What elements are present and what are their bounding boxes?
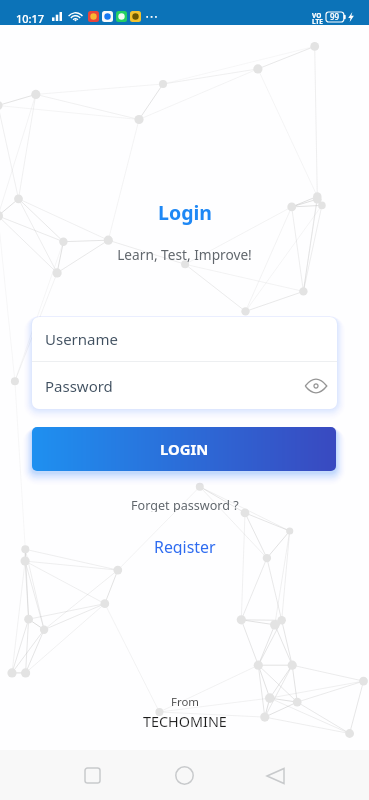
button[interactable]: LOGIN <box>32 427 336 471</box>
staticText: Learn, Test, Improve! <box>117 245 252 264</box>
button[interactable]: Register <box>150 534 220 557</box>
staticText: Username <box>45 329 118 349</box>
staticText: Register <box>154 536 216 555</box>
staticText: From <box>171 694 199 710</box>
button[interactable]: Home <box>164 755 205 796</box>
staticText: Forget password ? <box>131 497 239 512</box>
staticText: 99 <box>330 11 340 22</box>
button[interactable]: Recents <box>72 755 113 796</box>
staticText: VO LTE <box>312 11 323 26</box>
button[interactable]: Back <box>255 755 296 796</box>
staticText: Password <box>45 376 113 396</box>
button[interactable]: Forget password ? <box>127 495 243 514</box>
staticText: ⋯ <box>145 9 158 24</box>
staticText: 10:17 <box>16 11 45 26</box>
staticText: Login <box>158 199 212 225</box>
button[interactable]: Show password <box>304 374 328 398</box>
staticText: TECHOMINE <box>143 712 227 732</box>
button[interactable]: Password <box>32 362 337 409</box>
staticText: LOGIN <box>160 439 209 459</box>
button[interactable]: Username <box>32 317 337 361</box>
